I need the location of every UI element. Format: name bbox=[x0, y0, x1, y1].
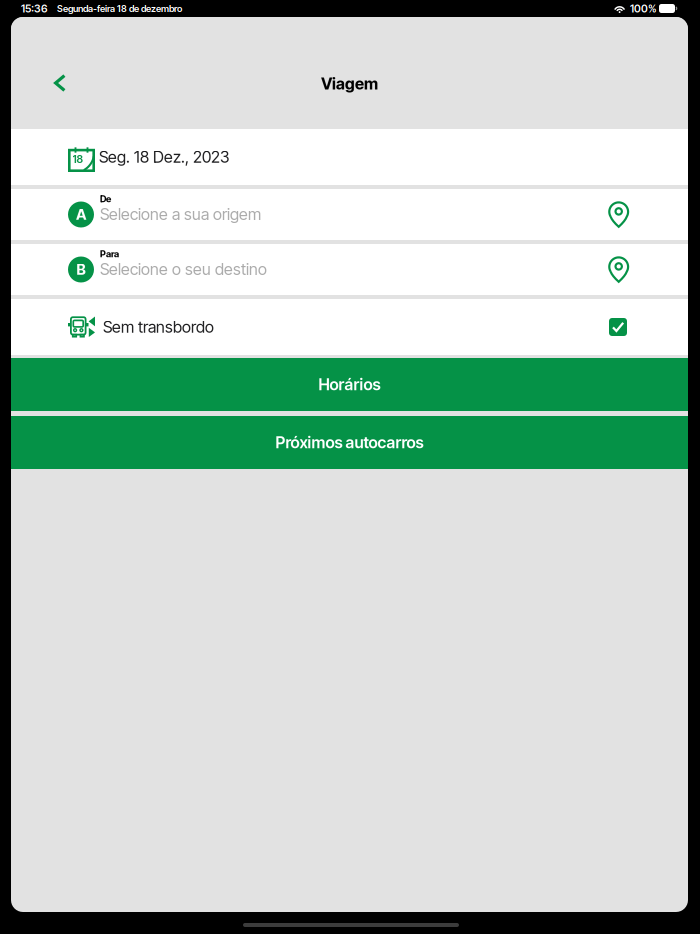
button[interactable]: B bbox=[11, 244, 688, 295]
staticText: Para bbox=[100, 248, 119, 259]
staticText: Viagem bbox=[321, 74, 378, 93]
staticText: 100% bbox=[630, 2, 657, 15]
staticText: A bbox=[76, 206, 86, 223]
button[interactable]: Próximos autocarros bbox=[11, 416, 688, 469]
button[interactable]: A bbox=[11, 189, 688, 240]
staticText: Seg. 18 Dez., 2023 bbox=[99, 147, 229, 167]
button[interactable]: Back bbox=[11, 17, 82, 105]
button[interactable]: Horários bbox=[11, 358, 688, 411]
staticText: Selecione a sua origem bbox=[100, 204, 261, 224]
button[interactable]: Sem transbordo bbox=[11, 299, 688, 355]
staticText: Próximos autocarros bbox=[275, 433, 423, 452]
staticText: Segunda-feira 18 de dezembro bbox=[57, 3, 182, 14]
staticText: Sem transbordo bbox=[103, 317, 214, 337]
staticText: De bbox=[100, 193, 111, 204]
staticText: Horários bbox=[318, 375, 380, 394]
staticText: Selecione o seu destino bbox=[100, 259, 267, 279]
staticText: B bbox=[76, 261, 85, 278]
staticText: 18 bbox=[73, 153, 84, 166]
button[interactable]: 18 bbox=[11, 129, 688, 185]
staticText: 15:36 bbox=[21, 2, 48, 15]
